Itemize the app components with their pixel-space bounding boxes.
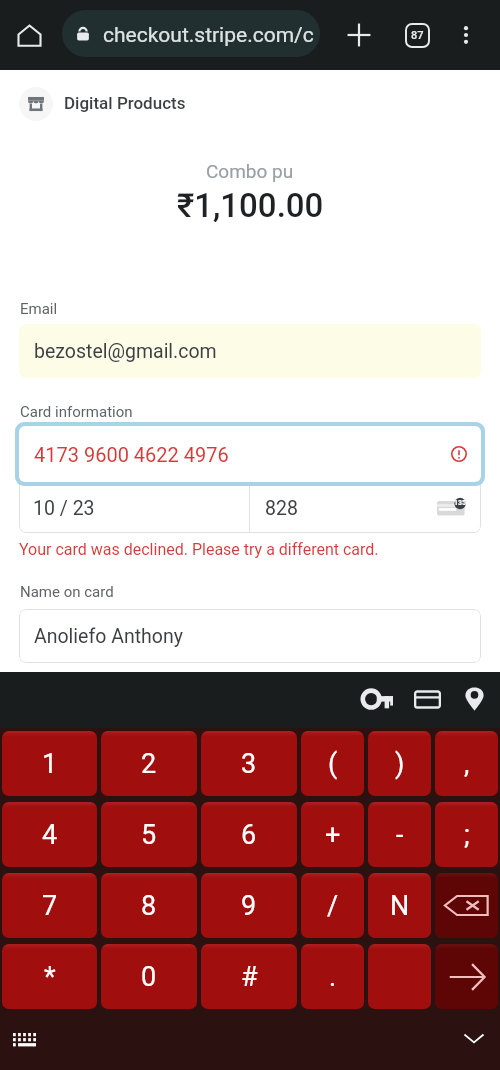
staticText: # <box>241 961 258 993</box>
staticText: Anoliefo Anthony <box>34 625 183 648</box>
button[interactable]: 1 <box>2 731 97 796</box>
staticText: + <box>325 819 341 851</box>
staticText: Your card was declined. Please try a dif… <box>19 540 379 559</box>
button[interactable]: Hide keyboard <box>456 1020 492 1056</box>
staticText: Name on card <box>20 583 114 601</box>
button[interactable]: 8 <box>101 873 197 938</box>
button[interactable]: Backspace <box>435 873 498 938</box>
staticText: ; <box>464 819 470 851</box>
button[interactable] <box>368 944 431 1009</box>
button[interactable]: bezostel@gmail.com <box>19 324 481 378</box>
staticText: 7 <box>42 890 58 922</box>
button[interactable]: 7 <box>2 873 97 938</box>
staticText: checkout.stripe.com/c <box>103 23 314 48</box>
button[interactable]: 828 <box>250 484 481 533</box>
staticText: 87 <box>411 29 424 42</box>
button[interactable]: 10 / 23 <box>19 484 249 533</box>
button[interactable]: Enter <box>435 944 498 1009</box>
button[interactable]: Anoliefo Anthony <box>19 609 481 663</box>
button[interactable]: . <box>301 944 364 1009</box>
button[interactable]: * <box>2 944 97 1009</box>
button[interactable]: 2 <box>101 731 197 796</box>
staticText: 9 <box>241 890 257 922</box>
button[interactable]: Payment methods <box>406 678 448 720</box>
button[interactable]: - <box>368 802 431 867</box>
staticText: / <box>327 890 339 922</box>
staticText: * <box>44 961 56 993</box>
staticText: 3 <box>241 748 257 780</box>
button[interactable]: ) <box>368 731 431 796</box>
staticText: 4 <box>42 819 58 851</box>
button[interactable]: # <box>201 944 297 1009</box>
staticText: Digital Products <box>64 93 186 113</box>
button[interactable]: 0 <box>101 944 197 1009</box>
button[interactable]: ( <box>301 731 364 796</box>
staticText: - <box>396 819 404 851</box>
button[interactable]: ; <box>435 802 498 867</box>
staticText: 8 <box>141 890 157 922</box>
staticText: , <box>464 748 470 780</box>
button[interactable]: 4173 9600 4622 4976 <box>19 426 481 482</box>
staticText: 2 <box>141 748 157 780</box>
button[interactable]: Addresses <box>453 678 495 720</box>
button[interactable]: Passwords <box>358 678 400 720</box>
button[interactable]: 4 <box>2 802 97 867</box>
staticText: 5 <box>141 819 157 851</box>
button[interactable]: More options <box>446 15 486 55</box>
staticText: 828 <box>265 497 298 520</box>
staticText: 135 <box>454 499 467 507</box>
staticText: 0 <box>141 961 157 993</box>
staticText: bezostel@gmail.com <box>34 340 217 363</box>
staticText: ( <box>328 748 338 780</box>
button[interactable]: , <box>435 731 498 796</box>
button[interactable]: Tabs <box>397 15 437 55</box>
button[interactable]: N <box>368 873 431 938</box>
staticText: Email <box>20 300 58 318</box>
button[interactable]: 9 <box>201 873 297 938</box>
staticText: N <box>390 890 410 922</box>
button[interactable]: 3 <box>201 731 297 796</box>
staticText: Card information <box>20 403 133 421</box>
staticText: 4173 9600 4622 4976 <box>34 443 229 466</box>
button[interactable]: Switch keyboard <box>6 1021 42 1057</box>
button[interactable]: New tab <box>339 15 379 55</box>
staticText: 6 <box>241 819 257 851</box>
staticText: 1 <box>42 748 58 780</box>
staticText: 10 / 23 <box>33 497 95 520</box>
staticText: . <box>329 961 337 993</box>
button[interactable]: checkout.stripe.com/c <box>62 10 320 57</box>
button[interactable]: + <box>301 802 364 867</box>
button[interactable]: 5 <box>101 802 197 867</box>
button[interactable]: / <box>301 873 364 938</box>
staticText: Combo pu <box>206 160 294 182</box>
staticText: ) <box>395 748 405 780</box>
button[interactable]: Home <box>9 15 49 55</box>
staticText: ₹1,100.00 <box>177 186 324 225</box>
button[interactable]: 6 <box>201 802 297 867</box>
